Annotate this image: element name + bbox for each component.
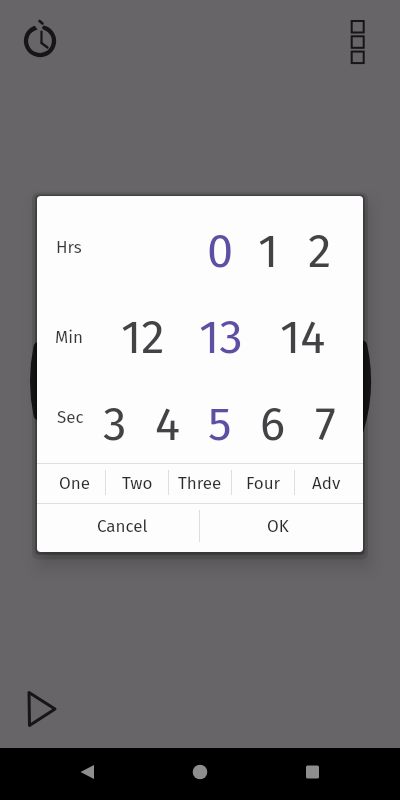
button[interactable]: 3 [55,384,175,464]
button[interactable]: 7 [265,384,363,464]
button[interactable]: OK [200,503,355,549]
staticText: 1 [258,223,279,279]
staticText: Three [178,473,222,493]
button[interactable] [267,748,400,800]
button[interactable]: Cancel [45,503,199,549]
staticText: Adv [312,473,341,493]
staticText: Four [246,473,281,493]
button[interactable]: 13 [161,297,281,377]
staticText: 4 [155,396,181,452]
staticText: 5 [208,396,232,452]
button[interactable] [0,748,134,800]
staticText: 12 [121,309,165,365]
button[interactable]: One [43,462,105,503]
button[interactable]: Three [169,462,231,503]
button[interactable]: 6 [213,384,333,464]
button[interactable]: 1 [208,211,328,291]
staticText: 3 [103,396,127,452]
button[interactable]: 4 [108,384,228,464]
button[interactable]: 2 [260,211,363,291]
button[interactable]: 5 [160,384,280,464]
staticText: 14 [280,309,326,365]
staticText: 6 [260,396,286,452]
button[interactable] [134,748,267,800]
button[interactable]: Adv [295,462,357,503]
button[interactable]: 14 [243,297,363,377]
staticText: Min [55,327,83,347]
staticText: 7 [315,396,336,452]
staticText: 13 [199,309,243,365]
button[interactable]: 12 [83,297,203,377]
button[interactable]: Four [232,462,294,503]
button[interactable]: 0 [160,211,280,291]
staticText: OK [267,516,289,536]
staticText: Cancel [97,516,148,536]
staticText: Sec [57,407,84,427]
staticText: 2 [308,223,332,279]
staticText: 0 [207,223,234,279]
staticText: Hrs [56,237,82,257]
button[interactable]: Two [106,462,168,503]
staticText: One [59,473,90,493]
staticText: Two [122,473,153,493]
